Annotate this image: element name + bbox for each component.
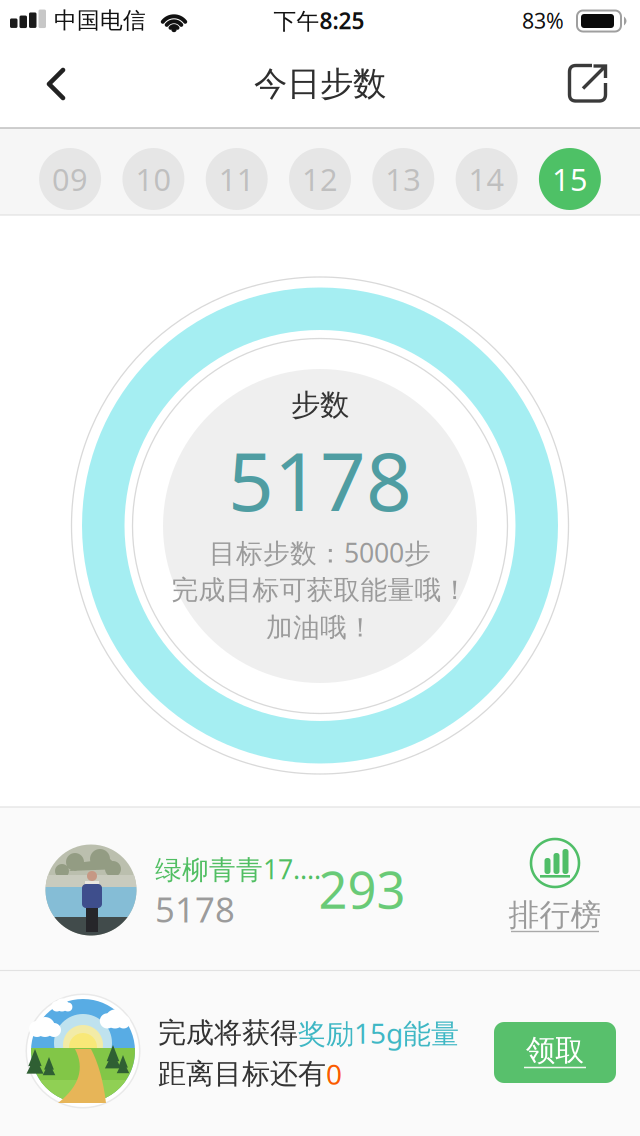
staticText: 14 [469,159,505,199]
button[interactable]: 领取 [494,1022,616,1083]
staticText: 13 [385,159,421,199]
button[interactable]: 13 [372,148,434,210]
button[interactable]: 14 [456,148,518,210]
staticText: 今日步数 [254,63,386,104]
staticText: 排行榜 [508,896,601,934]
button[interactable]: 12 [289,148,351,210]
button[interactable]: 排行榜 [500,827,610,943]
staticText: 加油哦！ [266,611,374,644]
staticText: 下午8:25 [273,5,364,35]
staticText: 15 [552,159,588,199]
staticText: 09 [52,159,88,199]
button[interactable]: 11 [206,148,268,210]
staticText: 目标步数：5000步 [209,535,431,570]
staticText: 领取 [526,1032,584,1068]
button[interactable]: 10 [122,148,184,210]
staticText: 293 [318,855,405,923]
staticText: 12 [302,159,338,199]
staticText: 完成目标可获取能量哦！ [171,574,468,606]
button[interactable]: Share [555,51,619,115]
button[interactable]: 15 [539,148,601,210]
staticText: 11 [219,159,255,199]
staticText: 10 [135,159,171,199]
staticText: 奖励15g能量 [298,1014,459,1052]
staticText: 距离目标还有 [158,1057,326,1091]
staticText: 83% [522,6,564,35]
staticText: 绿柳青青17.... [155,851,321,887]
button[interactable]: Back [26,49,86,119]
staticText: 5178 [228,427,412,533]
button[interactable]: 09 [39,148,101,210]
staticText: 步数 [291,387,349,423]
staticText: 完成将获得 [158,1016,298,1050]
staticText: 5178 [155,886,235,932]
staticText: 0 [326,1055,342,1093]
staticText: 中国电信 [54,7,146,34]
